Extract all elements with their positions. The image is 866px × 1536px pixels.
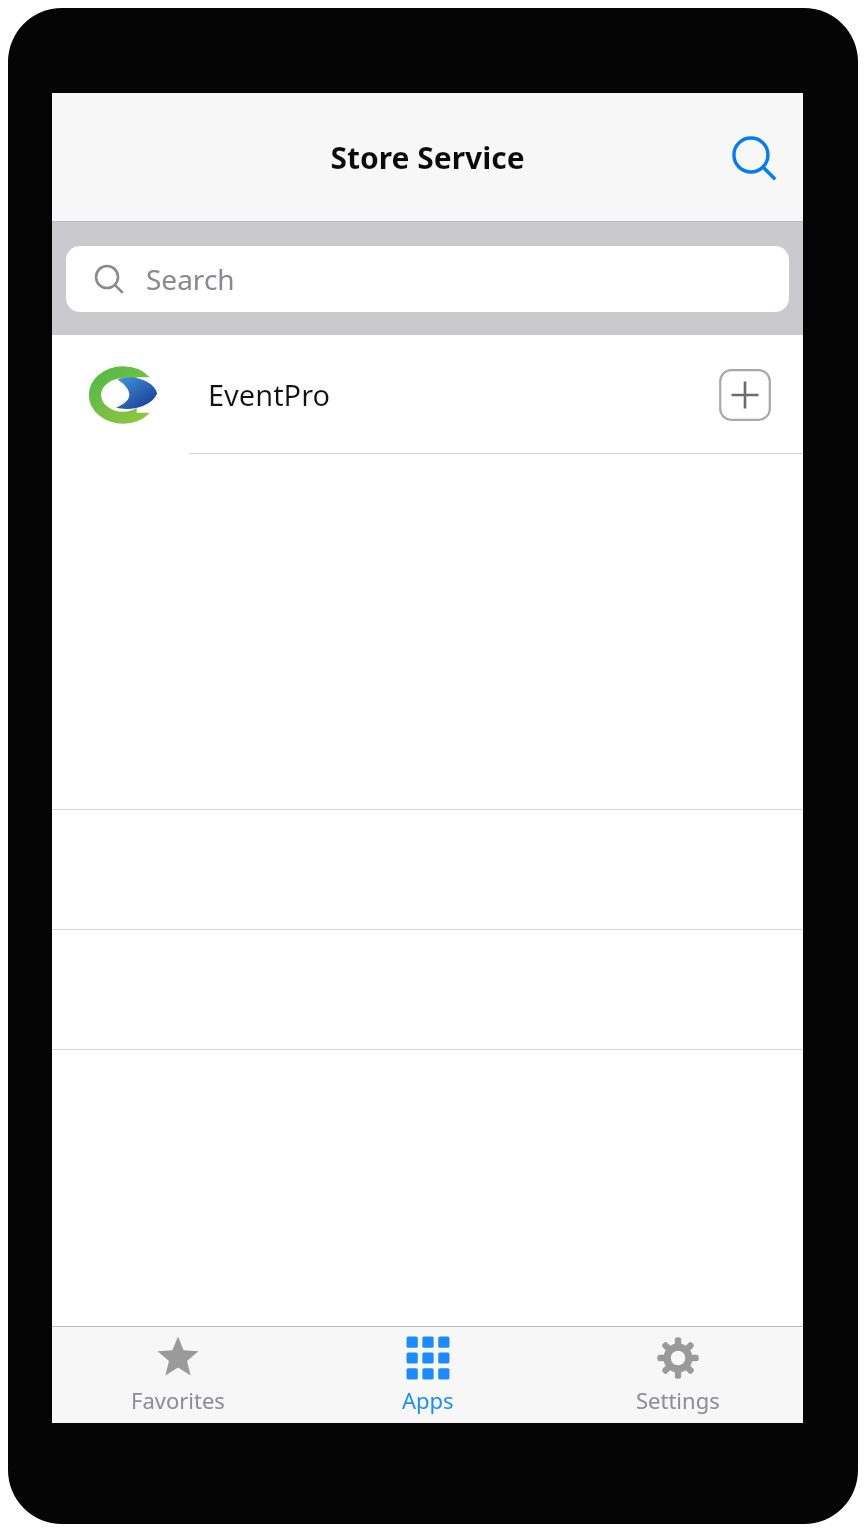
staticText: Search	[146, 260, 235, 298]
button[interactable]: Settings	[553, 1327, 803, 1423]
staticText: Settings	[636, 1385, 720, 1415]
staticText: Store Service	[330, 137, 525, 178]
button[interactable]: Apps	[303, 1327, 553, 1423]
staticText: Apps	[402, 1385, 454, 1415]
button[interactable]: Search	[66, 246, 789, 312]
button[interactable]: EventPro	[52, 335, 803, 454]
button[interactable]: Favorites	[52, 1327, 303, 1423]
staticText: Favorites	[131, 1385, 225, 1415]
button[interactable]: Search	[727, 131, 781, 185]
staticText: EventPro	[208, 375, 331, 414]
button[interactable]: Add EventPro	[719, 369, 771, 421]
